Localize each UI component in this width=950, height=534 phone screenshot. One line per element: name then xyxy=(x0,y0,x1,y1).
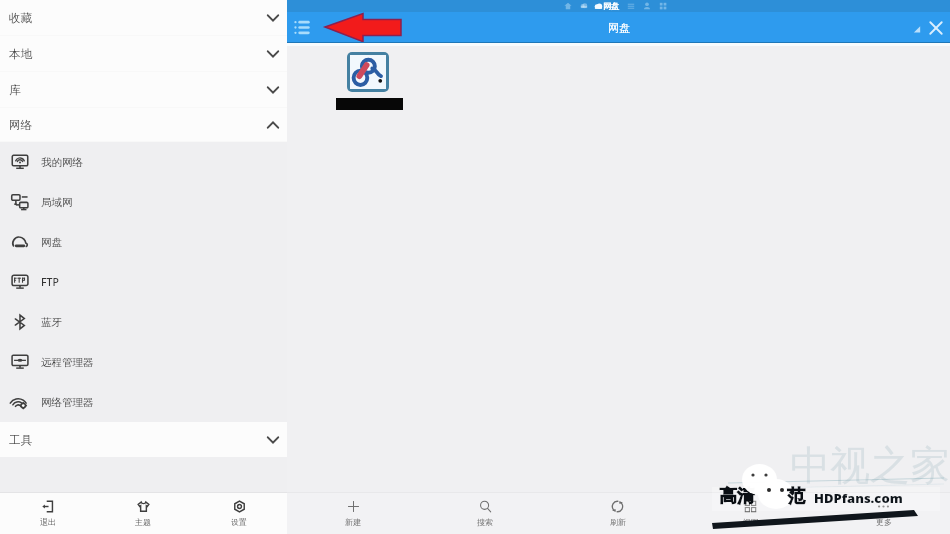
button[interactable] xyxy=(350,55,386,89)
staticText: 我的网络 xyxy=(41,156,83,169)
staticText: HDPfans.com xyxy=(814,489,903,507)
staticText: 网络管理器 xyxy=(41,396,94,409)
staticText: 搜索 xyxy=(477,517,493,527)
staticText: 工具 xyxy=(9,433,32,447)
staticText: 设置 xyxy=(231,517,247,527)
button[interactable]: 收藏 xyxy=(0,0,287,36)
button[interactable]: 搜索 xyxy=(419,492,551,534)
button[interactable]: Close xyxy=(925,17,947,39)
staticText: 本地 xyxy=(9,47,32,61)
staticText: 刷新 xyxy=(610,517,626,527)
button[interactable]: 我的网络 xyxy=(0,142,287,182)
button[interactable]: 网络管理器 xyxy=(0,382,287,422)
button[interactable]: 主题 xyxy=(95,492,191,534)
staticText: 远程管理器 xyxy=(41,356,94,369)
button[interactable]: FTP xyxy=(0,262,287,302)
button[interactable]: 视图 xyxy=(684,492,817,534)
button[interactable]: 局域网 xyxy=(0,182,287,222)
button[interactable]: 刷新 xyxy=(551,492,684,534)
staticText: 收藏 xyxy=(9,11,32,25)
staticText: 网盘 xyxy=(41,236,62,249)
staticText: 高清 xyxy=(719,485,755,508)
staticText: 库 xyxy=(9,83,21,97)
button[interactable]: 蓝牙 xyxy=(0,302,287,342)
staticText: 网盘 xyxy=(608,21,630,35)
button[interactable]: 更多 xyxy=(817,492,950,534)
button[interactable]: 工具 xyxy=(0,422,287,457)
staticText: 网盘 xyxy=(603,1,619,11)
button[interactable]: 库 xyxy=(0,72,287,108)
staticText: 蓝牙 xyxy=(41,316,62,329)
staticText: 中视之家 xyxy=(790,440,950,490)
button[interactable]: 网络 xyxy=(0,108,287,142)
button[interactable]: Menu xyxy=(293,18,312,37)
staticText: 局域网 xyxy=(41,196,73,209)
button[interactable]: 本地 xyxy=(0,36,287,72)
staticText: 新建 xyxy=(345,517,361,527)
button[interactable]: 新建 xyxy=(287,492,419,534)
button[interactable]: 网盘 xyxy=(0,222,287,262)
staticText: FTP xyxy=(41,275,59,289)
staticText: 主题 xyxy=(135,517,151,527)
staticText: 网络 xyxy=(9,118,32,132)
button[interactable]: 设置 xyxy=(191,492,287,534)
staticText: 更多 xyxy=(876,517,892,527)
button[interactable]: 退出 xyxy=(0,492,95,534)
staticText: 视图 xyxy=(743,517,759,527)
button[interactable]: 远程管理器 xyxy=(0,342,287,382)
staticText: 范 xyxy=(787,485,805,508)
staticText: 退出 xyxy=(40,517,56,527)
